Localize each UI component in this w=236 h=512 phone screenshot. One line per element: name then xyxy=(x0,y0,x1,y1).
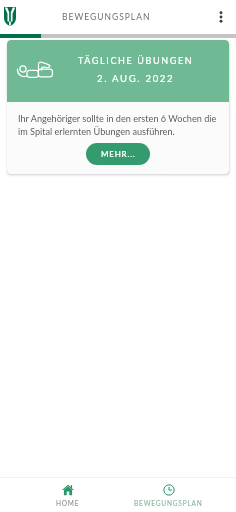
button[interactable]: Logo xyxy=(4,7,16,26)
staticText: 2. AUG. 2022 xyxy=(97,73,175,84)
button[interactable]: HOME xyxy=(17,478,118,512)
staticText: BEWEGUNGSPLAN xyxy=(134,499,203,507)
button[interactable]: MEHR... xyxy=(86,143,150,165)
button[interactable]: BEWEGUNGSPLAN xyxy=(118,478,219,512)
staticText: BEWEGUNGSPLAN xyxy=(62,12,151,22)
button[interactable]: TÄGLICHE ÜBUNGEN xyxy=(7,40,229,174)
staticText: HOME xyxy=(56,499,80,507)
staticText: Ihr Angehöriger sollte in den ersten 6 W… xyxy=(18,113,219,137)
staticText: MEHR... xyxy=(101,149,136,159)
staticText: TÄGLICHE ÜBUNGEN xyxy=(78,55,194,66)
button[interactable]: More options xyxy=(211,7,231,27)
